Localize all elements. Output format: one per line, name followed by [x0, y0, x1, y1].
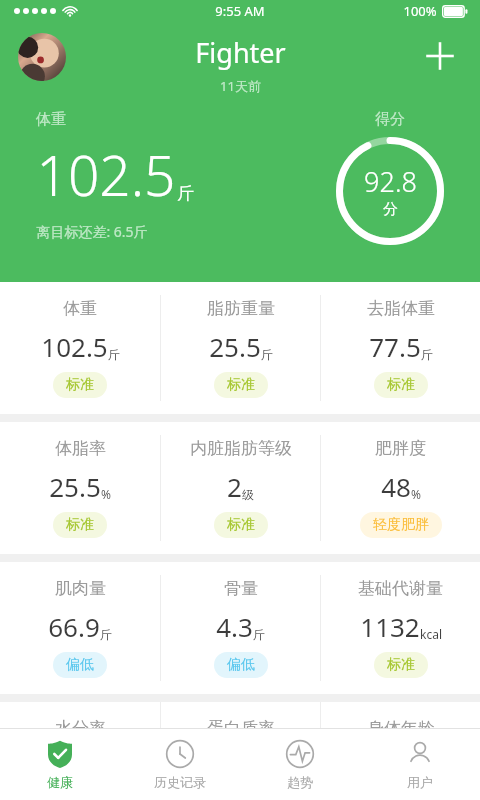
- staticText: Fighter: [195, 34, 286, 71]
- staticText: 蛋白质率: [207, 718, 275, 739]
- staticText: 内脏脂肪等级: [190, 438, 292, 459]
- staticText: 分: [383, 200, 398, 219]
- button[interactable]: Add measurement: [414, 30, 466, 82]
- staticText: 斤: [100, 627, 112, 642]
- staticText: kcal: [420, 626, 442, 642]
- button[interactable]: 趋势: [240, 731, 360, 798]
- button[interactable]: 用户: [360, 731, 480, 798]
- staticText: 肥胖度: [375, 438, 426, 459]
- button[interactable]: 水分率: [0, 702, 160, 800]
- staticText: 肌肉量: [55, 578, 106, 599]
- staticText: 历史记录: [154, 774, 206, 790]
- staticText: 脂肪重量: [207, 298, 275, 319]
- staticText: 斤: [253, 627, 265, 642]
- staticText: 趋势: [287, 774, 313, 790]
- staticText: 得分: [375, 110, 405, 129]
- button[interactable]: 体脂率: [0, 422, 160, 554]
- staticText: 102.5: [36, 137, 176, 212]
- staticText: 92.8: [364, 163, 417, 200]
- staticText: 偏低: [227, 656, 255, 674]
- staticText: 骨量: [224, 578, 258, 599]
- staticText: 岁: [410, 767, 422, 782]
- staticText: 标准: [66, 516, 94, 534]
- staticText: 斤: [108, 347, 120, 362]
- button[interactable]: 历史记录: [120, 731, 240, 798]
- staticText: 斤: [177, 183, 194, 204]
- staticText: 4.3: [216, 609, 253, 644]
- button[interactable]: 体重: [0, 282, 160, 414]
- staticText: 斤: [421, 347, 433, 362]
- staticText: %: [411, 486, 421, 502]
- button[interactable]: 肥胖度: [321, 422, 480, 554]
- button[interactable]: 去脂体重: [321, 282, 480, 414]
- staticText: 1132: [360, 609, 420, 644]
- staticText: 标准: [227, 516, 255, 534]
- button[interactable]: 脂肪重量: [161, 282, 320, 414]
- button[interactable]: 蛋白质率: [161, 702, 320, 800]
- staticText: 体重: [63, 298, 97, 319]
- button[interactable]: 骨量: [161, 562, 320, 694]
- staticText: 离目标还差: 6.5斤: [36, 222, 148, 241]
- staticText: 标准: [66, 376, 94, 394]
- staticText: %: [101, 486, 111, 502]
- button[interactable]: 身体年龄: [321, 702, 480, 800]
- staticText: 标准: [387, 376, 415, 394]
- staticText: 25.5: [49, 469, 101, 504]
- staticText: 标准: [387, 656, 415, 674]
- staticText: 28: [380, 749, 410, 784]
- staticText: 级: [242, 487, 254, 502]
- staticText: 体脂率: [55, 438, 106, 459]
- staticText: 66.9: [48, 609, 100, 644]
- staticText: 用户: [407, 774, 433, 790]
- staticText: 去脂体重: [367, 298, 435, 319]
- staticText: 11天前: [220, 77, 261, 95]
- staticText: 健康: [47, 774, 73, 790]
- staticText: 48: [381, 469, 411, 504]
- button[interactable]: 健康: [0, 731, 120, 798]
- staticText: 2: [227, 469, 242, 504]
- button[interactable]: Profile photo: [18, 33, 66, 81]
- button[interactable]: 基础代谢量: [321, 562, 480, 694]
- staticText: 100%: [403, 2, 437, 20]
- staticText: 25.5: [209, 329, 261, 364]
- staticText: 77.5: [369, 329, 421, 364]
- staticText: 斤: [261, 347, 273, 362]
- staticText: 体重: [36, 110, 66, 129]
- button[interactable]: 肌肉量: [0, 562, 160, 694]
- staticText: 水分率: [55, 718, 106, 739]
- staticText: 9:55 AM: [215, 2, 265, 20]
- staticText: 身体年龄: [367, 718, 435, 739]
- staticText: 102.5: [41, 329, 108, 364]
- staticText: 55.0: [49, 749, 101, 784]
- staticText: 轻度肥胖: [373, 516, 429, 534]
- staticText: 标准: [227, 376, 255, 394]
- staticText: 偏低: [66, 656, 94, 674]
- button[interactable]: 内脏脂肪等级: [161, 422, 320, 554]
- staticText: 基础代谢量: [358, 578, 443, 599]
